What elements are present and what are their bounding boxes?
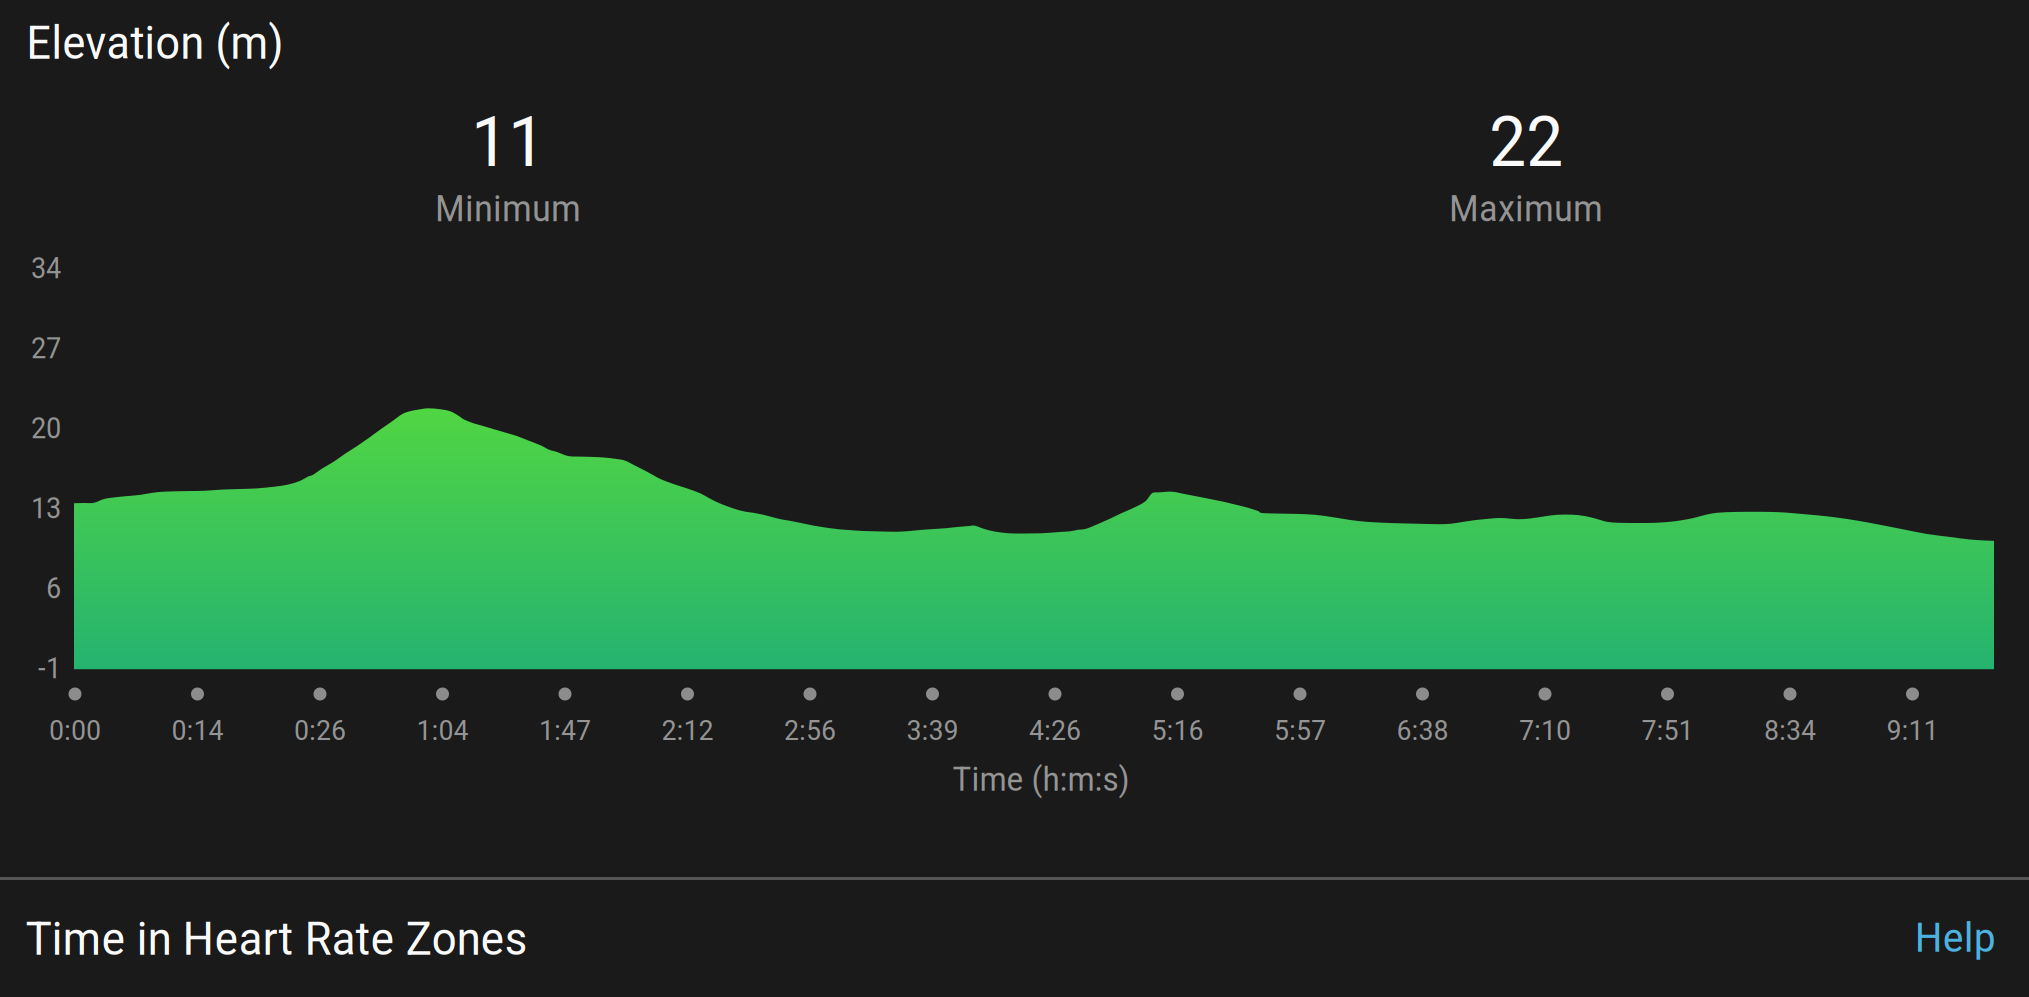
- staticText: Maximum: [1449, 188, 1603, 230]
- staticText: 9:11: [1886, 714, 1938, 747]
- staticText: 20: [31, 412, 61, 445]
- staticText: 0:26: [294, 714, 346, 747]
- staticText: 4:26: [1029, 714, 1081, 747]
- staticText: 5:57: [1274, 714, 1326, 747]
- staticText: 13: [31, 492, 61, 525]
- staticText: Time in Heart Rate Zones: [26, 911, 528, 966]
- staticText: 0:14: [171, 714, 223, 747]
- staticText: 11: [471, 101, 545, 183]
- staticText: -1: [38, 652, 61, 685]
- staticText: 2:56: [784, 714, 836, 747]
- staticText: 6:38: [1396, 714, 1448, 747]
- button[interactable]: Help: [1915, 900, 2025, 976]
- staticText: 6: [46, 572, 61, 605]
- staticText: 34: [31, 252, 61, 285]
- staticText: 2:12: [661, 714, 713, 747]
- staticText: 5:16: [1151, 714, 1203, 747]
- staticText: 1:04: [416, 714, 468, 747]
- staticText: 3:39: [906, 714, 958, 747]
- staticText: 1:47: [539, 714, 591, 747]
- staticText: 27: [31, 332, 61, 365]
- staticText: 8:34: [1764, 714, 1816, 747]
- staticText: Help: [1915, 913, 1996, 962]
- staticText: 22: [1489, 101, 1563, 183]
- staticText: Time (h:m:s): [952, 760, 1129, 799]
- staticText: Elevation (m): [26, 16, 283, 70]
- staticText: 0:00: [49, 714, 101, 747]
- staticText: Minimum: [435, 188, 581, 230]
- staticText: 7:51: [1641, 714, 1693, 747]
- staticText: 7:10: [1519, 714, 1571, 747]
